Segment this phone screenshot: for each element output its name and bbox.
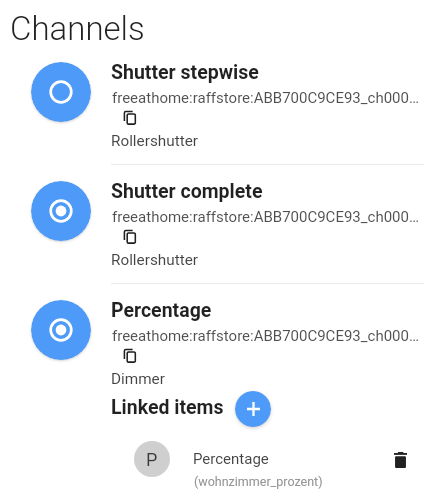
button[interactable]: Delete linked item [386,446,414,474]
staticText: Percentage [193,450,269,468]
button[interactable]: Copy channel id [123,229,137,243]
staticText: (wohnzimmer_prozent) [194,474,323,489]
button[interactable]: Copy channel id [123,110,137,124]
staticText: Linked items [111,396,224,419]
button[interactable] [0,434,424,496]
staticText: freeathome:raffstore:ABB700C9CE93_ch000… [112,89,419,107]
staticText: P [146,449,158,470]
staticText: Shutter stepwise [111,61,259,84]
staticText: freeathome:raffstore:ABB700C9CE93_ch000… [112,208,419,226]
button[interactable]: Add linked item [235,391,271,427]
staticText: Channels [10,9,145,48]
staticText: Dimmer [111,370,165,388]
button[interactable] [0,284,424,403]
staticText: Rollershutter [111,251,198,269]
button[interactable] [0,46,424,165]
staticText: Percentage [111,299,212,322]
button[interactable]: Copy channel id [123,348,137,362]
staticText: freeathome:raffstore:ABB700C9CE93_ch000… [112,327,419,345]
button[interactable] [0,165,424,284]
staticText: Rollershutter [111,132,198,150]
staticText: Shutter complete [111,180,263,203]
